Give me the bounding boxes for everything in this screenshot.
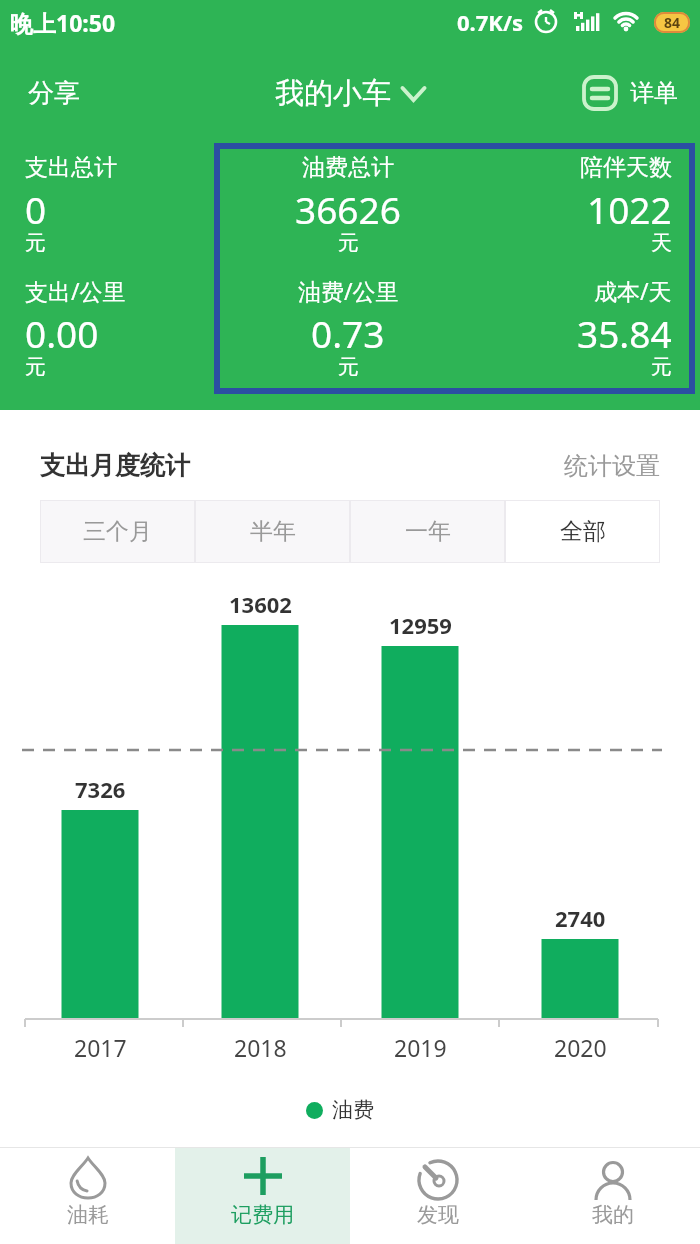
staticText: 2017 — [74, 1032, 127, 1063]
staticText: 我的小车 — [275, 75, 391, 112]
button[interactable]: 半年 — [195, 500, 350, 563]
button[interactable]: 油耗 — [0, 1148, 175, 1244]
staticText: 36626 — [295, 184, 401, 234]
staticText: 12959 — [389, 610, 452, 640]
button[interactable]: 三个月 — [40, 500, 195, 563]
staticText: 元 — [338, 230, 359, 256]
staticText: 支出月度统计 — [40, 450, 190, 481]
button[interactable]: 发现 — [350, 1148, 525, 1244]
staticText: 0 — [25, 184, 47, 234]
staticText: 2018 — [234, 1032, 287, 1063]
staticText: 晚上10:50 — [10, 7, 116, 38]
staticText: 0.73 — [311, 308, 385, 358]
staticText: 0.7K/s — [457, 7, 524, 37]
staticText: 2020 — [554, 1032, 607, 1063]
staticText: 油费总计 — [302, 153, 394, 182]
staticText: 油费/公里 — [298, 275, 399, 306]
button[interactable]: 分享 — [28, 77, 80, 110]
staticText: 2740 — [555, 903, 606, 933]
button[interactable]: 我的 — [525, 1148, 700, 1244]
staticText: 支出总计 — [25, 153, 117, 182]
button[interactable]: 统计设置 — [564, 451, 660, 481]
staticText: 1022 — [587, 184, 672, 234]
staticText: 元 — [25, 354, 46, 380]
button[interactable]: 全部 — [505, 500, 660, 563]
staticText: 三个月 — [83, 517, 152, 546]
staticText: 全部 — [560, 517, 606, 546]
staticText: 成本/天 — [594, 275, 672, 306]
staticText: 35.84 — [577, 308, 672, 358]
staticText: 油费 — [332, 1097, 374, 1123]
staticText: 元 — [338, 354, 359, 380]
staticText: 支出/公里 — [25, 275, 126, 306]
staticText: 13602 — [229, 589, 292, 619]
staticText: 元 — [651, 354, 672, 380]
staticText: 半年 — [250, 517, 296, 546]
button[interactable]: 一年 — [350, 500, 505, 563]
staticText: 一年 — [405, 517, 451, 546]
staticText: 2019 — [394, 1032, 447, 1063]
staticText: 7326 — [75, 774, 126, 804]
staticText: 记费用 — [231, 1202, 294, 1228]
staticText: 陪伴天数 — [580, 153, 672, 182]
staticText: 84 — [664, 13, 681, 32]
staticText: 0.00 — [25, 308, 99, 358]
staticText: 详单 — [630, 78, 678, 108]
staticText: 我的 — [592, 1202, 634, 1228]
button[interactable]: 记费用 — [175, 1148, 350, 1244]
staticText: 天 — [651, 230, 672, 256]
staticText: 分享 — [28, 77, 80, 110]
staticText: 元 — [25, 230, 46, 256]
staticText: 统计设置 — [564, 451, 660, 481]
button[interactable]: 详单 — [582, 75, 678, 111]
staticText: 发现 — [417, 1202, 459, 1228]
staticText: 油耗 — [67, 1202, 109, 1228]
button[interactable]: 我的小车 — [275, 75, 426, 112]
